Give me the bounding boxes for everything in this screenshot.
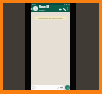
button[interactable]: Call [62, 7, 66, 11]
staticText: 9:41 [32, 3, 36, 5]
button[interactable]: More options [66, 7, 69, 10]
button[interactable]: Send voice message [65, 85, 70, 90]
button[interactable] [31, 85, 64, 90]
button[interactable]: Video call [58, 7, 62, 11]
button[interactable]: Back [31, 8, 33, 10]
staticText: Rose M [39, 5, 50, 9]
staticText: online [39, 9, 45, 12]
staticText: Messages are end-to-end encrypted. [34, 17, 67, 20]
